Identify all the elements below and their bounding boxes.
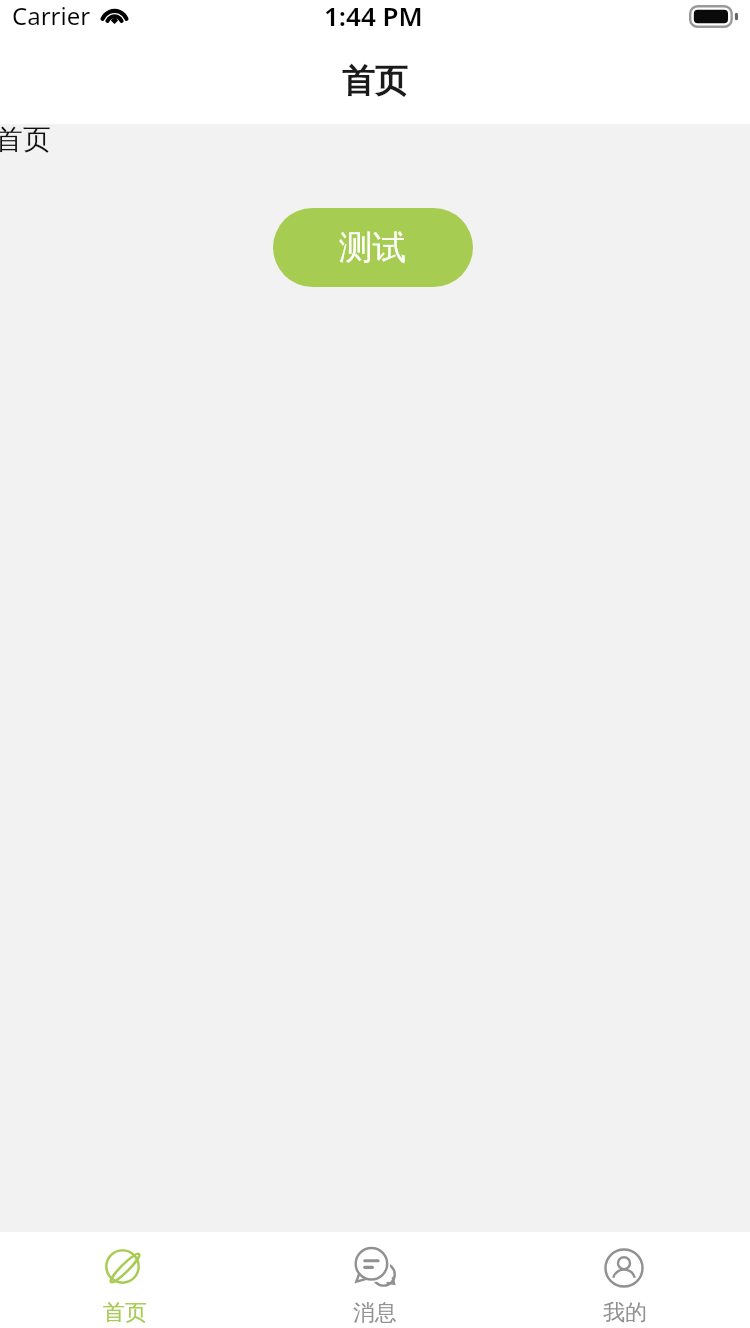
staticText: Carrier xyxy=(12,0,91,32)
staticText: 首页 xyxy=(342,60,408,101)
button[interactable]: 消息 xyxy=(250,1232,500,1328)
staticText: 我的 xyxy=(603,1299,647,1327)
staticText: 消息 xyxy=(353,1299,397,1327)
staticText: 1:44 PM xyxy=(324,0,423,33)
button[interactable]: 首页 xyxy=(0,1232,250,1328)
staticText: 首页 xyxy=(103,1299,147,1327)
button[interactable]: 我的 xyxy=(500,1232,750,1328)
button[interactable]: 测试 xyxy=(273,208,473,287)
staticText: 测试 xyxy=(339,227,407,269)
staticText: 首页 xyxy=(0,122,51,157)
other: Battery full xyxy=(689,5,738,28)
other: Wi-Fi signal xyxy=(100,2,129,24)
